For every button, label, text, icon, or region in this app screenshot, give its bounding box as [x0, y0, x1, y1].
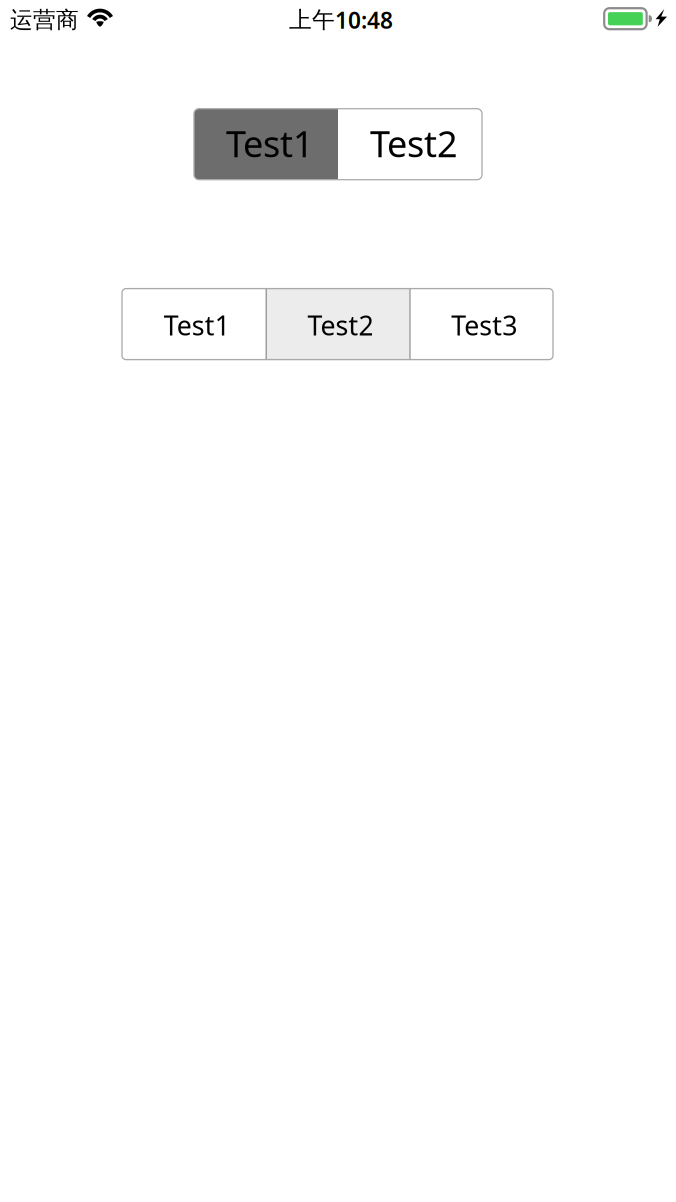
button[interactable]: Test1: [122, 289, 266, 360]
button[interactable]: Test3: [409, 289, 553, 360]
staticText: Test2: [370, 119, 458, 167]
staticText: Test1: [164, 307, 230, 343]
staticText: 运营商: [10, 6, 79, 34]
button[interactable]: Test1: [194, 109, 338, 180]
staticText: 10:48: [335, 5, 393, 35]
staticText: 上午: [289, 6, 335, 34]
staticText: Test2: [307, 307, 373, 343]
staticText: Test1: [226, 119, 314, 167]
button[interactable]: Test2: [338, 109, 482, 180]
button[interactable]: Test2: [266, 289, 409, 360]
staticText: Test3: [451, 307, 517, 343]
